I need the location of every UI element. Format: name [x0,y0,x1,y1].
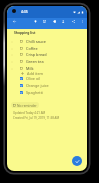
button[interactable]: Label [51,18,58,25]
button[interactable]: Collaborator [60,18,67,25]
staticText: Milk [26,66,34,71]
button[interactable]: Chilli sauce [7,38,87,45]
button[interactable]: More options [79,18,86,25]
staticText: 4:35 [21,9,28,14]
button[interactable]: Share [70,18,77,25]
button[interactable]: Pin [32,18,39,25]
button[interactable]: Add image [41,18,48,25]
staticText: Coffee [26,46,38,51]
staticText: Orange juice [26,83,49,88]
button[interactable]: Milk [7,65,87,72]
staticText: Green tea [26,59,44,64]
button[interactable]: Crisp bread [7,51,87,58]
staticText: Crisp bread [26,52,47,57]
staticText: Created Fri, Jul 19, 2019, 11:38 AM [13,116,60,120]
staticText: Updated Today 4:21 AM [13,111,46,115]
button[interactable]: Spaghetti [7,89,87,96]
button[interactable]: Orange juice [7,82,87,89]
staticText: Chilli sauce [26,39,46,44]
button[interactable]: Coffee [7,45,87,52]
staticText: Add item [27,71,44,76]
staticText: Olive oil [26,76,41,81]
button[interactable]: Add item [7,70,87,77]
button[interactable]: No reminder [13,102,37,108]
button[interactable]: Back [11,18,18,25]
button[interactable]: Green tea [7,58,87,65]
staticText: Shopping list [14,30,36,34]
staticText: No reminder [17,103,37,107]
button[interactable]: Olive oil [7,75,87,82]
staticText: Spaghetti [26,90,44,95]
button[interactable]: Done [72,156,82,166]
